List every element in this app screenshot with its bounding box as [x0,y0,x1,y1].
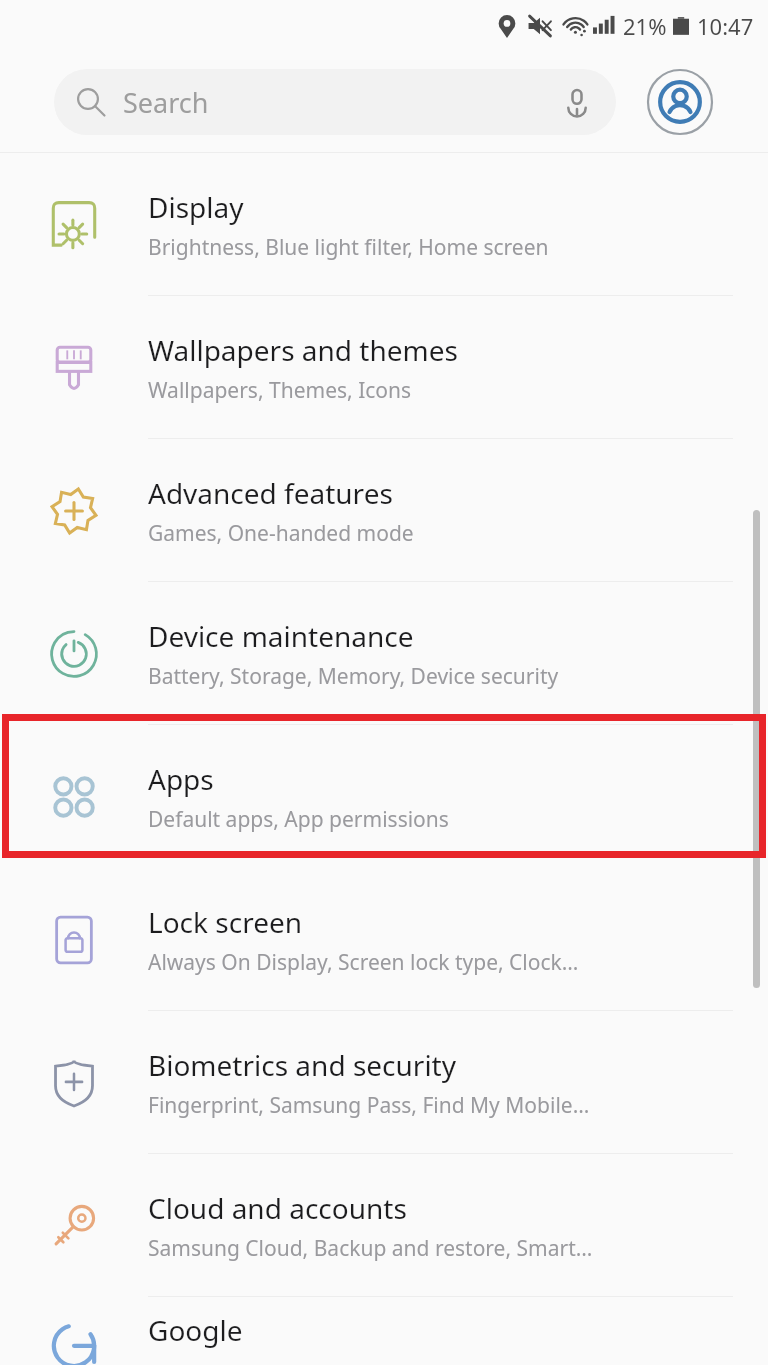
button[interactable]: Google [0,1297,768,1365]
button[interactable]: Advanced features [0,439,768,582]
staticText: Device maintenance [148,617,414,655]
staticText: Always On Display, Screen lock type, Clo… [148,948,579,977]
staticText: Biometrics and security [148,1046,457,1084]
button[interactable]: Apps [0,725,768,868]
staticText: Display [148,188,244,226]
button[interactable]: Cloud and accounts [0,1154,768,1297]
staticText: Games, One-handed mode [148,519,414,548]
staticText: Lock screen [148,903,303,941]
staticText: Samsung Cloud, Backup and restore, Smart… [148,1234,593,1263]
staticText: Wallpapers and themes [148,331,458,369]
button[interactable]: Voice search [560,85,594,119]
staticText: Cloud and accounts [148,1189,407,1227]
button[interactable]: Wallpapers and themes [0,296,768,439]
staticText: Google [148,1311,243,1349]
button[interactable]: Lock screen [0,868,768,1011]
staticText: Advanced features [148,474,393,512]
staticText: 10:47 [697,11,754,41]
staticText: Brightness, Blue light filter, Home scre… [148,233,549,262]
staticText: Default apps, App permissions [148,805,449,834]
staticText: Wallpapers, Themes, Icons [148,376,412,405]
staticText: Search [123,84,209,121]
button[interactable]: Device maintenance [0,582,768,725]
staticText: Apps [148,760,214,798]
button[interactable]: Biometrics and security [0,1011,768,1154]
staticText: Battery, Storage, Memory, Device securit… [148,662,559,691]
staticText: Fingerprint, Samsung Pass, Find My Mobil… [148,1091,590,1120]
staticText: 21% [623,11,667,41]
button[interactable]: Search [54,69,616,135]
button[interactable]: Account [646,68,714,136]
button[interactable]: Display [0,153,768,296]
